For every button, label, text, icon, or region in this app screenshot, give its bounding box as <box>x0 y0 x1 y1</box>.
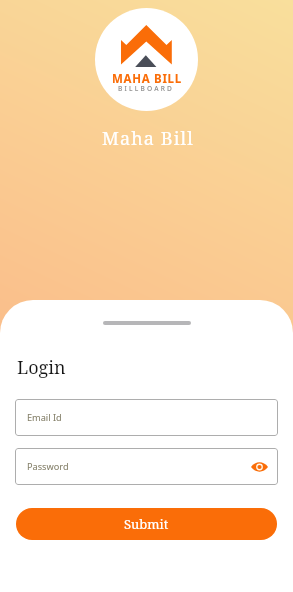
staticText: BILLBOARD <box>118 84 175 93</box>
button[interactable]: Password <box>15 448 278 485</box>
staticText: Login <box>17 355 66 380</box>
button[interactable]: Show password <box>249 457 269 477</box>
staticText: Password <box>27 460 69 473</box>
button[interactable]: Submit <box>16 508 277 540</box>
button[interactable]: Email Id <box>15 399 278 436</box>
staticText: Maha Bill <box>102 126 194 151</box>
staticText: Email Id <box>27 411 62 424</box>
staticText: Submit <box>124 515 169 533</box>
staticText: MAHA BILL <box>112 71 182 87</box>
